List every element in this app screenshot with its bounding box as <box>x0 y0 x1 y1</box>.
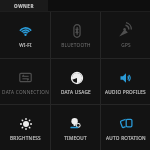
button[interactable]: BLUETOOTH <box>51 12 100 58</box>
button[interactable]: BRIGHTNESS <box>0 105 50 150</box>
staticText: OWNER <box>14 3 34 9</box>
button[interactable]: DATA CONNECTION <box>0 59 50 104</box>
staticText: TIMEOUT <box>64 135 87 141</box>
button[interactable]: AUTO ROTATION <box>101 105 150 150</box>
staticText: DATA USAGE <box>61 89 91 95</box>
staticText: AUDIO PROFILES <box>105 89 146 95</box>
button[interactable]: GPS <box>101 12 150 58</box>
staticText: DATA CONNECTION <box>2 89 49 95</box>
button[interactable]: DATA USAGE <box>51 59 100 104</box>
button[interactable]: AUDIO PROFILES <box>101 59 150 104</box>
button[interactable]: WI-FI <box>0 12 50 58</box>
staticText: BLUETOOTH <box>61 42 91 48</box>
staticText: GPS <box>121 42 131 48</box>
button[interactable]: OWNER <box>0 0 48 11</box>
staticText: AUTO ROTATION <box>106 135 146 141</box>
staticText: WI-FI <box>19 42 32 48</box>
button[interactable]: TIMEOUT <box>51 105 100 150</box>
staticText: BRIGHTNESS <box>10 135 41 141</box>
